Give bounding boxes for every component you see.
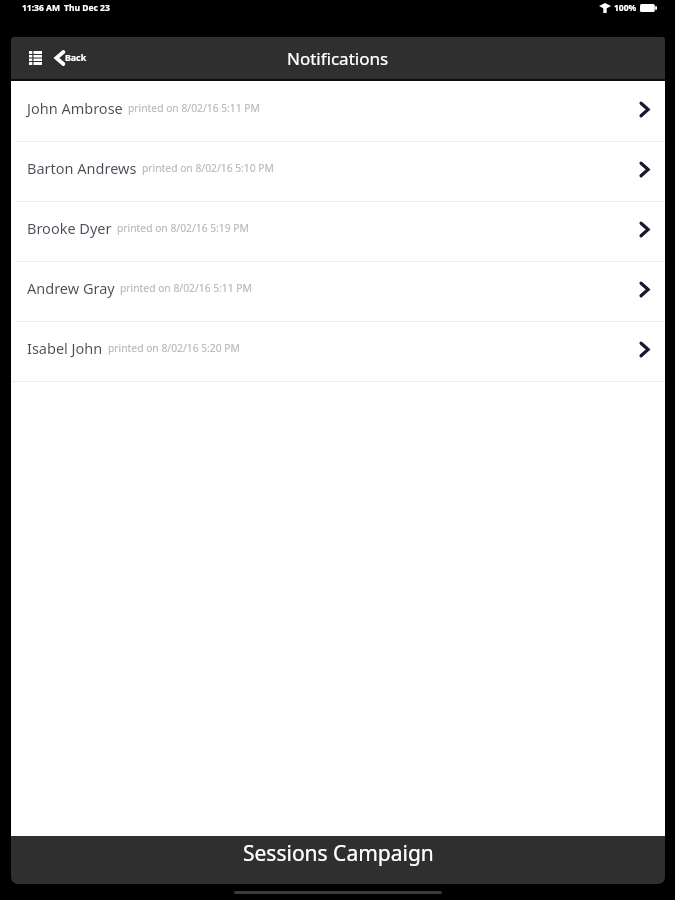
staticText: John Ambrose: [27, 98, 123, 118]
staticText: Isabel John: [27, 338, 103, 358]
staticText: 100%: [614, 2, 637, 14]
button[interactable]: Brooke Dyer: [11, 202, 665, 262]
staticText: 11:36 AM: [22, 2, 60, 14]
button[interactable]: Barton Andrews: [11, 142, 665, 202]
staticText: Sessions Campaign: [243, 839, 434, 868]
staticText: Thu Dec 23: [64, 2, 110, 14]
button[interactable]: Back: [55, 37, 95, 79]
staticText: printed on 8/02/16 5:20 PM: [108, 341, 240, 355]
button[interactable]: Andrew Gray: [11, 262, 665, 322]
staticText: Brooke Dyer: [27, 218, 112, 238]
staticText: printed on 8/02/16 5:19 PM: [117, 221, 249, 235]
staticText: printed on 8/02/16 5:10 PM: [142, 161, 274, 175]
staticText: printed on 8/02/16 5:11 PM: [128, 101, 260, 115]
button[interactable]: Sessions Campaign: [11, 836, 665, 884]
button[interactable]: Isabel John: [11, 322, 665, 382]
staticText: Andrew Gray: [27, 278, 115, 298]
button[interactable]: Menu: [11, 37, 59, 79]
staticText: Barton Andrews: [27, 158, 137, 178]
staticText: Notifications: [287, 47, 389, 70]
staticText: printed on 8/02/16 5:11 PM: [120, 281, 252, 295]
staticText: Back: [65, 52, 87, 64]
button[interactable]: John Ambrose: [11, 82, 665, 142]
